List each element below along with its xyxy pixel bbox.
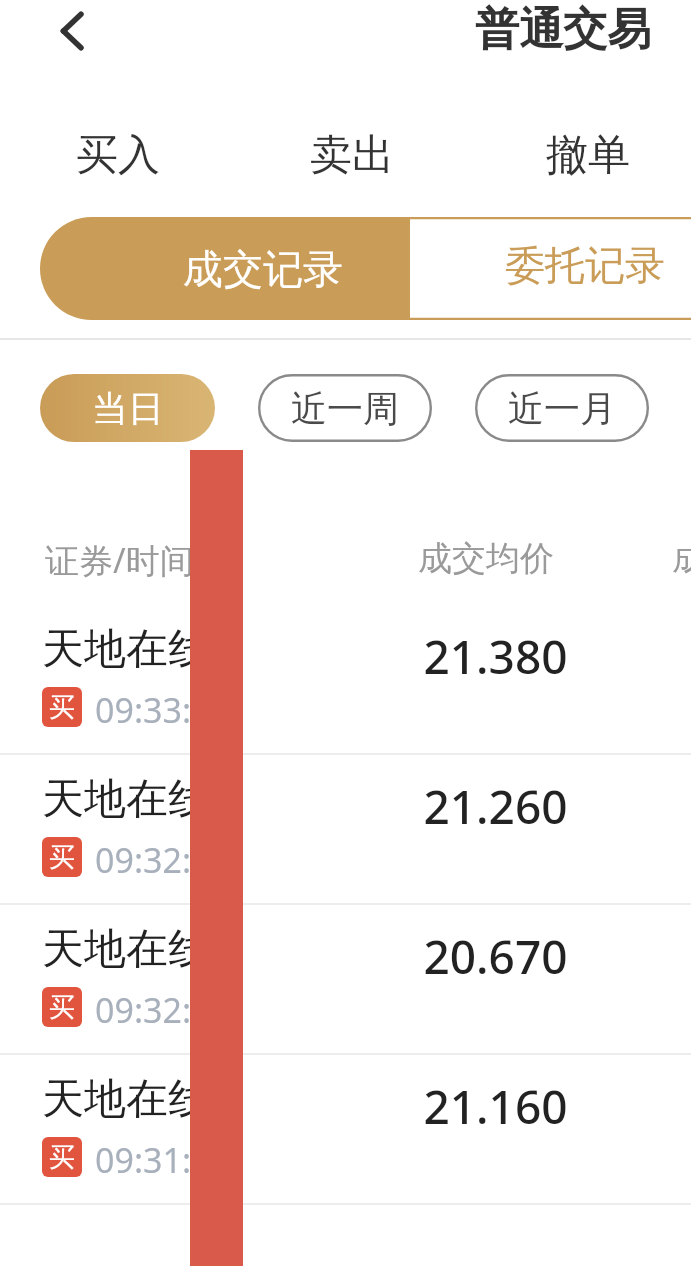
staticText: 买 bbox=[49, 1141, 75, 1174]
staticText: 卖出 bbox=[310, 129, 394, 182]
staticText: 近一月 bbox=[508, 386, 616, 431]
staticText: 成交数量 bbox=[672, 537, 691, 580]
staticText: 21.380 bbox=[423, 625, 568, 688]
button[interactable]: 近一周 bbox=[258, 374, 432, 442]
button[interactable]: 成交记录 bbox=[40, 217, 410, 320]
button[interactable]: 天地在线 bbox=[0, 755, 691, 905]
button[interactable]: Back bbox=[36, 0, 110, 68]
staticText: 普通交易 bbox=[475, 2, 651, 57]
button[interactable]: 撤单 bbox=[498, 108, 678, 202]
staticText: 09:32:58 bbox=[95, 837, 230, 883]
staticText: 买 bbox=[49, 691, 75, 724]
staticText: 买 bbox=[49, 841, 75, 874]
staticText: 成交均价 bbox=[418, 537, 554, 580]
button[interactable]: 买入 bbox=[28, 108, 208, 202]
staticText: 09:31:36 bbox=[95, 1137, 230, 1183]
staticText: 证券/时间 bbox=[45, 537, 194, 583]
button[interactable]: 近一月 bbox=[475, 374, 649, 442]
button[interactable]: 委托记录 bbox=[410, 217, 691, 320]
staticText: 天地在线 bbox=[42, 623, 210, 676]
staticText: 当日 bbox=[92, 386, 164, 431]
staticText: 成交记录 bbox=[183, 244, 343, 294]
button[interactable]: 卖出 bbox=[262, 108, 442, 202]
staticText: 买 bbox=[49, 991, 75, 1024]
staticText: 天地在线 bbox=[42, 923, 210, 976]
staticText: 09:33:45 bbox=[95, 687, 230, 733]
staticText: 天地在线 bbox=[42, 1073, 210, 1126]
button[interactable]: 当日 bbox=[40, 374, 215, 442]
staticText: 21.160 bbox=[423, 1075, 568, 1138]
staticText: 09:32:12 bbox=[95, 987, 230, 1033]
staticText: 近一周 bbox=[291, 386, 399, 431]
staticText: 买入 bbox=[76, 129, 160, 182]
button[interactable]: 天地在线 bbox=[0, 605, 691, 755]
button[interactable]: 天地在线 bbox=[0, 1055, 691, 1205]
staticText: 21.260 bbox=[423, 775, 568, 838]
staticText: 天地在线 bbox=[42, 773, 210, 826]
staticText: 委托记录 bbox=[505, 240, 665, 290]
staticText: 撤单 bbox=[546, 129, 630, 182]
staticText: 20.670 bbox=[423, 925, 568, 988]
button[interactable]: 天地在线 bbox=[0, 905, 691, 1055]
